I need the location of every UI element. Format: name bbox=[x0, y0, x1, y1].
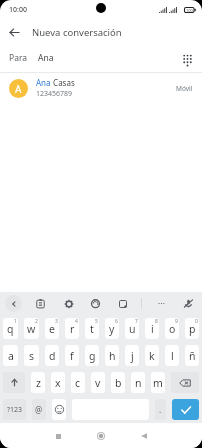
staticText: j bbox=[131, 349, 134, 363]
button[interactable]: y bbox=[105, 318, 119, 339]
button[interactable]: t bbox=[85, 318, 99, 339]
button[interactable]: Collapse toolbar bbox=[5, 295, 22, 312]
button[interactable]: d bbox=[45, 345, 59, 366]
button[interactable]: g bbox=[85, 345, 99, 366]
button[interactable]: Back bbox=[0, 20, 28, 44]
staticText: e bbox=[49, 322, 55, 336]
button[interactable]: a bbox=[3, 345, 18, 366]
staticText: 123456789 bbox=[36, 89, 73, 99]
staticText: 2 bbox=[35, 318, 38, 325]
button[interactable]: o bbox=[165, 318, 179, 339]
button[interactable]: Back bbox=[133, 425, 155, 447]
staticText: Nueva conversación bbox=[32, 26, 122, 39]
button[interactable]: b bbox=[111, 372, 125, 393]
staticText: Para bbox=[9, 52, 28, 64]
button[interactable]: x bbox=[51, 372, 65, 393]
button[interactable]: s bbox=[24, 345, 39, 366]
button[interactable]: Enter bbox=[172, 399, 199, 420]
staticText: z bbox=[36, 376, 41, 390]
staticText: b bbox=[115, 376, 122, 390]
button[interactable]: . bbox=[155, 399, 166, 420]
button[interactable]: v bbox=[91, 372, 105, 393]
staticText: 3 bbox=[55, 318, 58, 325]
button[interactable]: ?123 bbox=[3, 399, 26, 420]
staticText: s bbox=[29, 349, 35, 363]
staticText: w bbox=[27, 322, 36, 336]
button[interactable]: u bbox=[125, 318, 139, 339]
button[interactable]: Themes bbox=[87, 295, 104, 312]
staticText: h bbox=[109, 349, 116, 363]
staticText: q bbox=[7, 322, 14, 336]
staticText: t bbox=[90, 322, 94, 336]
staticText: Móvil bbox=[176, 84, 193, 93]
button[interactable]: r bbox=[65, 318, 79, 339]
staticText: ñ bbox=[189, 349, 196, 363]
staticText: 0 bbox=[195, 318, 198, 325]
staticText: m bbox=[153, 376, 163, 390]
staticText: l bbox=[171, 349, 174, 363]
staticText: p bbox=[189, 322, 196, 336]
staticText: 4 bbox=[75, 318, 78, 325]
staticText: ?123 bbox=[7, 405, 23, 415]
staticText: @ bbox=[35, 404, 43, 415]
button[interactable]: l bbox=[165, 345, 179, 366]
staticText: 8 bbox=[155, 318, 158, 325]
button[interactable]: w bbox=[24, 318, 39, 339]
button[interactable]: Backspace bbox=[171, 372, 199, 393]
staticText: g bbox=[89, 349, 96, 363]
button[interactable]: f bbox=[65, 345, 79, 366]
staticText: k bbox=[149, 349, 155, 363]
staticText: Casas bbox=[51, 77, 75, 88]
staticText: a bbox=[8, 349, 14, 363]
button[interactable]: More options bbox=[153, 295, 170, 312]
staticText: A bbox=[15, 82, 22, 96]
button[interactable]: c bbox=[71, 372, 85, 393]
button[interactable]: A bbox=[0, 73, 202, 103]
staticText: 7 bbox=[135, 318, 138, 325]
button[interactable]: Settings bbox=[60, 295, 77, 312]
button[interactable]: Stickers bbox=[114, 295, 131, 312]
button[interactable]: z bbox=[31, 372, 45, 393]
button[interactable]: Clipboard bbox=[32, 295, 49, 312]
button[interactable]: j bbox=[125, 345, 139, 366]
staticText: o bbox=[169, 322, 176, 336]
button[interactable]: h bbox=[105, 345, 119, 366]
staticText: 10:00 bbox=[9, 5, 27, 15]
staticText: 9 bbox=[175, 318, 178, 325]
button[interactable]: ñ bbox=[185, 345, 199, 366]
staticText: i bbox=[151, 322, 154, 336]
button[interactable]: Voice input off bbox=[180, 295, 197, 312]
button[interactable]: i bbox=[145, 318, 159, 339]
button[interactable]: p bbox=[185, 318, 199, 339]
button[interactable]: Dialpad bbox=[177, 48, 197, 68]
staticText: y bbox=[109, 322, 115, 336]
staticText: 100 bbox=[186, 8, 193, 13]
staticText: f bbox=[70, 349, 74, 363]
staticText: Ana bbox=[36, 77, 51, 88]
staticText: 1 bbox=[14, 318, 17, 325]
staticText: u bbox=[129, 322, 136, 336]
button[interactable]: m bbox=[151, 372, 165, 393]
staticText: . bbox=[159, 404, 162, 415]
staticText: d bbox=[49, 349, 56, 363]
staticText: 6 bbox=[115, 318, 118, 325]
button[interactable]: q bbox=[3, 318, 18, 339]
staticText: 5 bbox=[95, 318, 98, 325]
staticText: c bbox=[75, 376, 81, 390]
button[interactable]: n bbox=[131, 372, 145, 393]
button[interactable]: Home bbox=[90, 425, 112, 447]
button[interactable]: k bbox=[145, 345, 159, 366]
staticText: n bbox=[135, 376, 142, 390]
button[interactable]: Emoji bbox=[52, 399, 66, 420]
button[interactable]: @ bbox=[32, 399, 46, 420]
staticText: r bbox=[70, 322, 75, 336]
staticText: Ana bbox=[38, 52, 54, 64]
button[interactable]: Shift bbox=[3, 372, 25, 393]
staticText: x bbox=[55, 376, 61, 390]
button[interactable]: Recents bbox=[47, 425, 69, 447]
staticText: v bbox=[95, 376, 101, 390]
button[interactable]: e bbox=[45, 318, 59, 339]
